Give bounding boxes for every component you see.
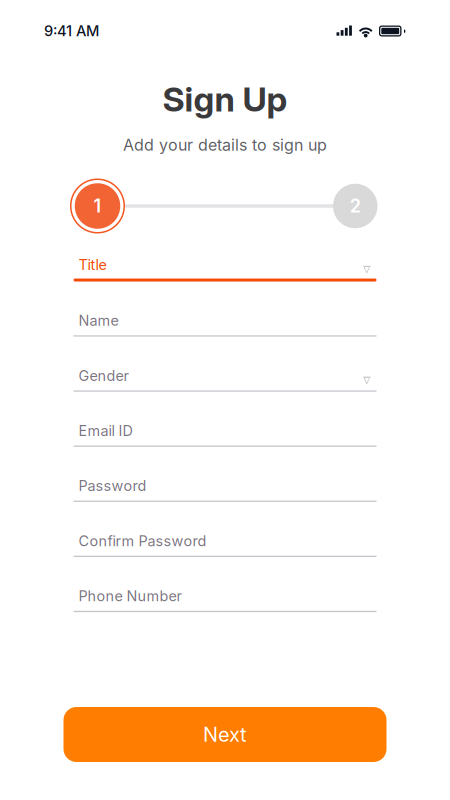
staticText: Confirm Password bbox=[78, 532, 206, 550]
staticText: 2 bbox=[350, 195, 361, 217]
staticText: Sign Up bbox=[162, 78, 287, 120]
staticText: 1 bbox=[93, 195, 101, 217]
staticText: Name bbox=[78, 312, 118, 329]
staticText: Next bbox=[203, 722, 247, 747]
button[interactable]: Gender bbox=[73, 356, 376, 392]
button[interactable]: Email ID bbox=[73, 411, 376, 447]
button[interactable]: Name bbox=[73, 301, 376, 337]
button[interactable]: Password bbox=[73, 467, 376, 502]
staticText: Phone Number bbox=[78, 587, 181, 605]
staticText: Title bbox=[78, 256, 106, 273]
staticText: Gender bbox=[78, 367, 128, 384]
staticText: 9:41 AM bbox=[44, 22, 99, 40]
staticText: Email ID bbox=[78, 422, 132, 439]
button[interactable]: Confirm Password bbox=[73, 522, 376, 557]
staticText: Add your details to sign up bbox=[123, 135, 327, 154]
staticText: Password bbox=[78, 477, 146, 495]
button[interactable]: Title bbox=[73, 245, 376, 281]
button[interactable]: Next bbox=[63, 707, 386, 762]
button[interactable]: Phone Number bbox=[73, 577, 376, 612]
